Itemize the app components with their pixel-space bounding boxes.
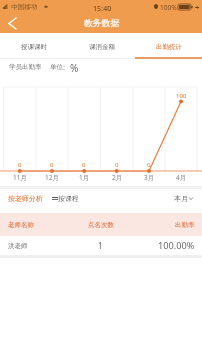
staticText: 教务数据 [84, 18, 120, 29]
staticText: 15:40 [93, 3, 112, 13]
staticText: 本月 [174, 194, 188, 203]
button[interactable]: 按课程 [52, 194, 79, 203]
staticText: : [63, 62, 66, 72]
button[interactable]: 本月 [174, 194, 193, 203]
staticText: 0 [147, 161, 151, 169]
staticText: 出勤统计 [156, 43, 182, 51]
staticText: 单位 [50, 63, 63, 71]
staticText: 100 [176, 92, 187, 100]
button[interactable]: 授课课时 [0, 33, 68, 58]
staticText: 3月 [144, 173, 155, 182]
staticText: 0 [18, 161, 22, 169]
button[interactable]: 课消金额 [68, 33, 135, 58]
staticText: 11月 [13, 173, 27, 182]
staticText: 学员出勤率 [9, 63, 42, 71]
button[interactable]: 按老师分析 [8, 194, 43, 203]
staticText: 课消金额 [89, 43, 115, 51]
staticText: 4月 [176, 173, 187, 182]
staticText: 洪老师 [8, 242, 28, 250]
staticText: 1 [98, 240, 103, 251]
staticText: 0 [50, 161, 54, 169]
staticText: 按课程 [58, 194, 79, 203]
staticText: 0 [82, 161, 86, 169]
staticText: 1月 [79, 173, 90, 182]
staticText: 12月 [45, 173, 59, 182]
staticText: 授课课时 [21, 43, 47, 51]
staticText: 点名次数 [88, 221, 114, 229]
staticText: 0 [115, 161, 119, 169]
staticText: 中国移动 [11, 3, 38, 11]
staticText: 按老师分析 [8, 194, 43, 203]
staticText: 出勤率 [175, 221, 195, 229]
button[interactable]: 出勤统计 [135, 33, 202, 58]
button[interactable]: 洪老师 [0, 236, 202, 255]
button[interactable]: Back [1, 14, 24, 33]
staticText: 2月 [112, 173, 123, 182]
staticText: 老师名称 [8, 221, 34, 229]
staticText: % [70, 61, 79, 75]
staticText: 100% [160, 3, 177, 12]
staticText: 100.00% [158, 239, 195, 252]
